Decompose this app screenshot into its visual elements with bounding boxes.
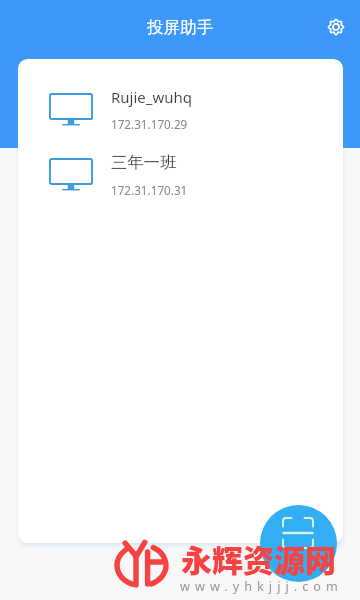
button[interactable]: Rujie_wuhq [18,77,343,142]
button[interactable]: Scan QR code [260,505,337,582]
button[interactable]: 三年一班 [18,142,343,207]
staticText: Rujie_wuhq [111,87,193,107]
button[interactable]: Settings [318,9,354,45]
staticText: 永辉资源网 [181,536,336,581]
staticText: 投屏助手 [147,17,213,38]
staticText: 172.31.170.29 [111,116,188,132]
staticText: 三年一班 [111,152,177,173]
staticText: www.yhkjjj.com [180,578,343,595]
staticText: 172.31.170.31 [111,182,188,198]
